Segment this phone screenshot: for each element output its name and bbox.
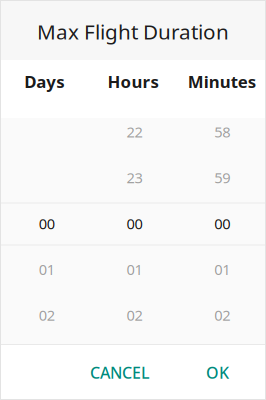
button[interactable]: CANCEL: [78, 354, 162, 390]
button[interactable]: 58 Minutes: [178, 109, 266, 155]
button[interactable]: 02 Hours: [91, 292, 178, 338]
staticText: CANCEL: [90, 362, 150, 383]
button[interactable]: 01 Hours: [91, 246, 178, 292]
staticText: 00: [39, 214, 55, 233]
button[interactable]: 22 Hours: [91, 109, 178, 155]
staticText: Minutes: [188, 70, 256, 93]
button[interactable]: 00 Hours: [91, 200, 178, 246]
button[interactable]: 00 Days: [3, 200, 91, 246]
button[interactable]: 02 Days: [3, 292, 91, 338]
staticText: 01: [214, 259, 230, 279]
staticText: 23: [126, 168, 142, 187]
button[interactable]: 02 Minutes: [178, 292, 266, 338]
staticText: 02: [126, 305, 142, 325]
staticText: 59: [214, 168, 230, 187]
staticText: OK: [206, 362, 229, 383]
staticText: Max Flight Duration: [37, 17, 229, 45]
staticText: 02: [214, 305, 230, 325]
button[interactable]: 01 Minutes: [178, 246, 266, 292]
button[interactable]: 00 Minutes: [178, 200, 266, 246]
staticText: 01: [39, 259, 55, 279]
button[interactable]: 59 Minutes: [178, 155, 266, 201]
button[interactable]: 01 Days: [3, 246, 91, 292]
staticText: Days: [24, 70, 64, 93]
button[interactable]: 23 Hours: [91, 155, 178, 201]
staticText: 58: [214, 122, 230, 142]
staticText: 22: [126, 122, 142, 142]
staticText: Hours: [107, 70, 158, 93]
staticText: 00: [126, 214, 142, 233]
button[interactable]: OK: [194, 354, 241, 390]
staticText: 00: [214, 214, 230, 233]
staticText: 02: [39, 305, 55, 325]
staticText: 01: [126, 259, 142, 279]
